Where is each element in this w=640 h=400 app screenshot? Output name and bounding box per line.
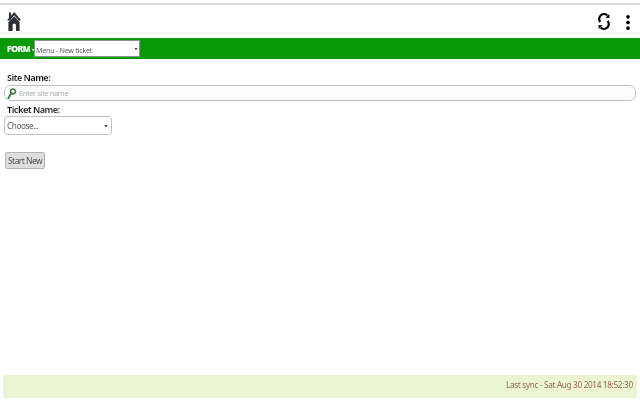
button[interactable]: Home xyxy=(7,12,21,31)
staticText: Start New xyxy=(8,155,43,167)
button[interactable]: Menu - New ticket xyxy=(34,40,140,57)
button[interactable]: Enter site name xyxy=(4,85,636,101)
button[interactable]: Start New xyxy=(5,152,45,169)
staticText: FORM - xyxy=(7,43,35,55)
button[interactable]: Choose... xyxy=(4,116,112,135)
staticText: Choose... xyxy=(7,120,39,131)
button[interactable]: More options xyxy=(619,14,636,31)
staticText: Last sync - Sat Aug 30 2014 18:52:30 xyxy=(506,379,633,390)
staticText: Enter site name xyxy=(19,88,69,98)
button[interactable]: Refresh xyxy=(595,12,613,31)
staticText: Menu - New ticket xyxy=(36,45,93,55)
staticText: Ticket Name: xyxy=(7,103,60,115)
staticText: Site Name: xyxy=(7,71,51,83)
